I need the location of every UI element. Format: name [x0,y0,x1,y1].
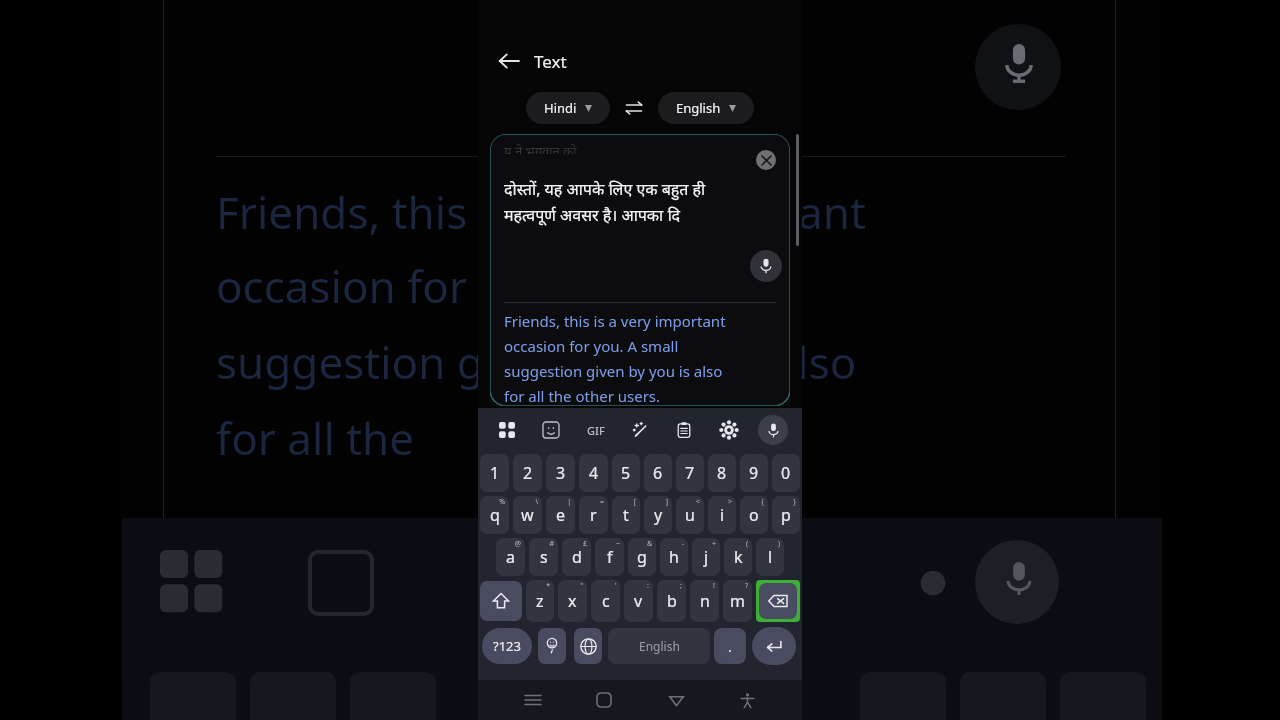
staticText: q [490,504,500,526]
staticText: ( [745,539,748,549]
staticText: n [700,590,710,612]
staticText: दोस्तों, यह आपके लिए एक बहुत ही महत्वपूर… [504,178,706,226]
button[interactable]: 6 [644,454,672,492]
staticText: w [521,504,534,526]
staticText: Friends, this is a very important [216,182,866,242]
button[interactable]: 5 [612,454,640,492]
staticText: d [572,546,582,568]
button[interactable]: Accessibility [730,683,764,717]
staticText: : [647,581,649,591]
button[interactable]: Home [587,683,621,717]
button[interactable]: Back [492,44,526,78]
button[interactable]: English [608,628,710,664]
button[interactable]: [ [612,496,640,534]
button[interactable]: { [740,496,768,534]
staticText: यु ने भगवान को [504,142,577,154]
button[interactable]: Shift [480,581,522,621]
button[interactable]: @ [496,538,525,576]
button[interactable]: \ [513,496,542,534]
button[interactable]: Back [659,683,693,717]
staticText: l [768,546,773,568]
button[interactable]: 4 [579,454,608,492]
button[interactable]: Clear text [756,150,776,170]
staticText: 9 [749,462,759,484]
button[interactable]: % [480,496,509,534]
button[interactable]: Change language [574,628,602,664]
button[interactable]: Backspace [759,583,797,619]
button[interactable]: ; [657,580,686,622]
button[interactable]: Settings [714,415,744,445]
button[interactable]: # [529,538,558,576]
button[interactable]: " [558,580,587,622]
button[interactable]: 8 [708,454,736,492]
button[interactable]: £ [562,538,591,576]
staticText: ? [744,581,748,591]
staticText: i [720,504,725,526]
button[interactable]: ( [724,538,752,576]
button[interactable]: Emoji [538,628,566,664]
staticText: x [568,590,577,612]
staticText: p [781,504,791,526]
button[interactable]: 1 [480,454,509,492]
button[interactable]: Edit text [625,415,655,445]
button[interactable]: } [772,496,800,534]
staticText: k [734,546,743,568]
staticText: Friends, this is a very important occasi… [504,311,726,406]
button[interactable]: ? [723,580,752,622]
staticText: v [634,590,643,612]
button[interactable]: ! [690,580,719,622]
staticText: r [590,504,597,526]
button[interactable]: < [676,496,704,534]
staticText: 5 [621,462,631,484]
button[interactable]: ) [756,538,784,576]
button[interactable]: 9 [740,454,768,492]
staticText: { [761,497,764,507]
button[interactable]: GIF [581,415,611,445]
button[interactable]: 3 [546,454,575,492]
button[interactable]: Menu [516,683,550,717]
staticText: GIF [587,423,605,438]
button[interactable]: = [579,496,608,534]
button[interactable]: Stickers [536,415,566,445]
staticText: y [654,504,663,526]
staticText: } [793,497,796,507]
button[interactable]: Voice input [750,250,782,282]
button[interactable]: ~ [595,538,624,576]
staticText: & [646,539,652,549]
button[interactable]: ] [644,496,672,534]
button[interactable]: 2 [513,454,542,492]
button[interactable]: Enter [752,627,796,665]
staticText: for all the [216,408,415,468]
button[interactable]: 7 [676,454,704,492]
staticText: @ [514,539,521,549]
staticText: English [676,99,721,117]
button[interactable]: * [526,580,554,622]
staticText: b [667,590,677,612]
staticText: u [685,504,695,526]
staticText: h [669,546,679,568]
button[interactable]: Hindi [526,92,610,124]
button[interactable]: . [714,628,746,664]
button[interactable]: Voice typing [758,415,788,445]
staticText: ) [777,539,780,549]
button[interactable]: - [660,538,688,576]
button[interactable]: + [692,538,720,576]
staticText: % [499,497,505,507]
button[interactable]: > [708,496,736,534]
staticText: 4 [589,462,599,484]
button[interactable]: : [624,580,653,622]
button[interactable]: Apps [492,415,522,445]
button[interactable]: & [628,538,656,576]
staticText: 2 [523,462,533,484]
button[interactable]: ' [591,580,620,622]
button[interactable]: | [546,496,575,534]
staticText: t [623,504,629,526]
button[interactable]: English [658,92,754,124]
staticText: 8 [717,462,727,484]
button[interactable]: Swap languages [622,96,646,120]
staticText: e [556,504,566,526]
staticText: . [728,637,732,656]
button[interactable]: 0 [772,454,800,492]
button[interactable]: Clipboard [669,415,699,445]
button[interactable]: ?123 [482,628,532,664]
